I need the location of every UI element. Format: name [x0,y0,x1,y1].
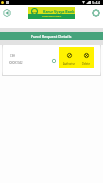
button[interactable]: Back [1,7,12,18]
staticText: KVB [32,10,37,13]
button[interactable]: Delete [78,53,94,66]
button[interactable]: Fund request CSH XXXXX1042 [3,45,100,75]
button[interactable]: Authorise [61,53,77,66]
staticText: XXXXX1042 [9,61,23,65]
staticText: Karur Vysya Bank [43,9,75,14]
staticText: Fund Request Details [31,34,72,39]
staticText: 5:44 [92,0,100,5]
staticText: Authorise [63,62,75,66]
staticText: CSH [10,54,15,58]
staticText: Smart way to bank [42,15,62,18]
button[interactable]: Settings [90,7,101,18]
staticText: Delete [82,62,90,66]
